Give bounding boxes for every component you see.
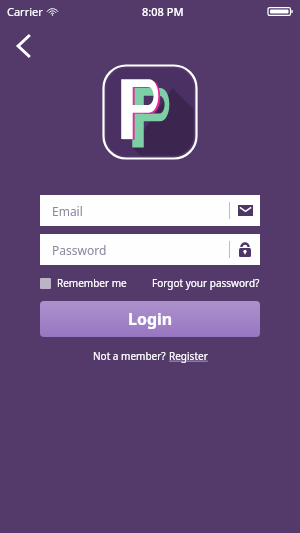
staticText: Remember me <box>57 276 127 290</box>
button[interactable]: Email <box>40 195 260 226</box>
button[interactable]: Password <box>40 234 260 265</box>
staticText: Email <box>52 203 229 219</box>
staticText: Login <box>128 308 173 330</box>
staticText: Carrier <box>7 4 43 19</box>
button[interactable]: Forgot your password? <box>152 274 260 292</box>
other: Password <box>239 242 251 257</box>
staticText: Forgot your password? <box>152 276 260 290</box>
button[interactable]: Back <box>6 28 42 64</box>
staticText: 8:08 PM <box>142 4 184 19</box>
button[interactable]: Register <box>169 349 208 363</box>
staticText: Password <box>52 242 229 258</box>
button[interactable]: Remember me <box>40 274 127 292</box>
other: Email <box>238 205 253 216</box>
staticText: Not a member? <box>93 349 169 363</box>
staticText: Register <box>169 349 208 363</box>
button[interactable]: Login <box>40 301 260 337</box>
